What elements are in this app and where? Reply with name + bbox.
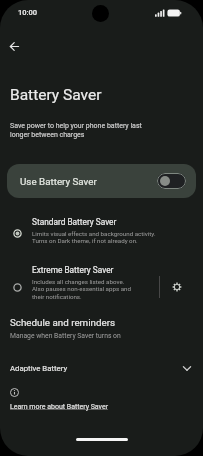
button[interactable]: Extreme Battery Saver — [0, 259, 203, 309]
button[interactable] — [4, 36, 24, 56]
staticText: Extreme Battery Saver — [32, 265, 114, 275]
staticText: 10:00 — [18, 8, 38, 17]
button[interactable] — [168, 278, 186, 296]
staticText: Limits visual effects and background act… — [32, 230, 156, 245]
staticText: Adaptive Battery — [10, 364, 68, 373]
staticText: Learn more about Battery Saver — [10, 403, 109, 411]
staticText: Schedule and reminders — [10, 317, 116, 328]
button[interactable]: Learn more about Battery Saver — [10, 403, 109, 411]
button[interactable]: Standard Battery Saver — [0, 211, 203, 255]
staticText: Save power to help your phone battery la… — [10, 122, 142, 139]
staticText: Standard Battery Saver — [32, 217, 117, 227]
staticText: Manage when Battery Saver turns on — [10, 332, 121, 340]
button[interactable]: Use Battery Saver — [7, 164, 196, 198]
staticText: Includes all changes listed above. Also … — [32, 278, 131, 301]
staticText: Use Battery Saver — [20, 176, 97, 187]
button[interactable]: Adaptive Battery — [0, 353, 203, 383]
staticText: Battery Saver — [10, 86, 102, 104]
